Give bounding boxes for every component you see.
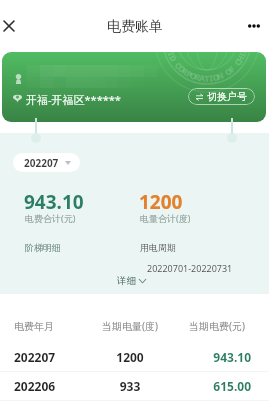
button[interactable]: Close bbox=[0, 8, 27, 44]
button[interactable]: 详细 bbox=[115, 273, 148, 289]
staticText: 202207 bbox=[24, 156, 59, 170]
staticText: 202206 bbox=[14, 378, 86, 394]
staticText: 电费年月 bbox=[14, 320, 86, 333]
staticText: 当期电费(元) bbox=[174, 319, 260, 333]
button[interactable]: 202207 bbox=[0, 343, 269, 372]
staticText: 切换户号 bbox=[207, 90, 247, 103]
button[interactable]: 202206 bbox=[0, 372, 269, 401]
staticText: 电量合计(度) bbox=[140, 212, 191, 224]
staticText: 电费合计(元) bbox=[25, 212, 76, 224]
button[interactable]: 切换户号 bbox=[188, 88, 255, 105]
staticText: 详细 bbox=[117, 275, 136, 287]
button[interactable]: More options bbox=[236, 8, 269, 44]
staticText: 615.00 bbox=[174, 378, 251, 394]
staticText: 用电周期 bbox=[140, 242, 176, 253]
staticText: 1200 bbox=[139, 189, 183, 215]
staticText: 当期电量(度) bbox=[86, 319, 174, 333]
staticText: 202207 bbox=[14, 349, 86, 365]
staticText: 开福-开福区****** bbox=[26, 92, 121, 107]
button[interactable]: 阶梯明细 bbox=[25, 242, 61, 253]
button[interactable]: 202207 bbox=[13, 153, 80, 172]
staticText: 933 bbox=[86, 378, 174, 394]
staticText: 1200 bbox=[86, 349, 174, 365]
staticText: 20220701-20220731 bbox=[147, 262, 233, 274]
staticText: 电费账单 bbox=[107, 18, 163, 36]
staticText: 943.10 bbox=[174, 349, 251, 365]
staticText: 943.10 bbox=[24, 189, 84, 215]
